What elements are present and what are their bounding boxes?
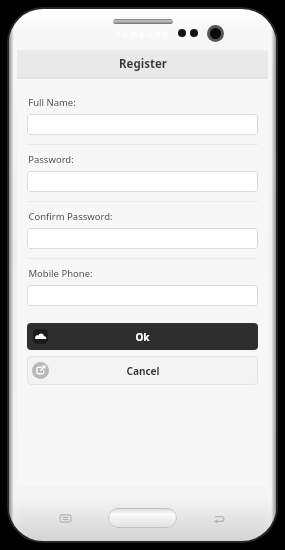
button[interactable]: Ok <box>27 323 258 350</box>
staticText: Mobile Phone: <box>28 267 93 280</box>
button[interactable]: Mobile Phone: <box>27 285 258 306</box>
button[interactable]: Menu <box>57 510 73 526</box>
staticText: Password: <box>28 153 74 166</box>
button[interactable]: Password: <box>27 171 258 192</box>
staticText: Confirm Password: <box>28 210 113 223</box>
staticText: Register <box>119 56 167 72</box>
button[interactable]: Back <box>210 510 226 526</box>
button[interactable]: Confirm Password: <box>27 228 258 249</box>
staticText: Cancel <box>126 364 160 378</box>
button[interactable]: Cancel <box>27 356 258 385</box>
staticText: Full Name: <box>28 96 76 109</box>
staticText: Ok <box>135 330 150 344</box>
button[interactable]: Full Name: <box>27 114 258 135</box>
button[interactable]: Home <box>108 508 177 528</box>
